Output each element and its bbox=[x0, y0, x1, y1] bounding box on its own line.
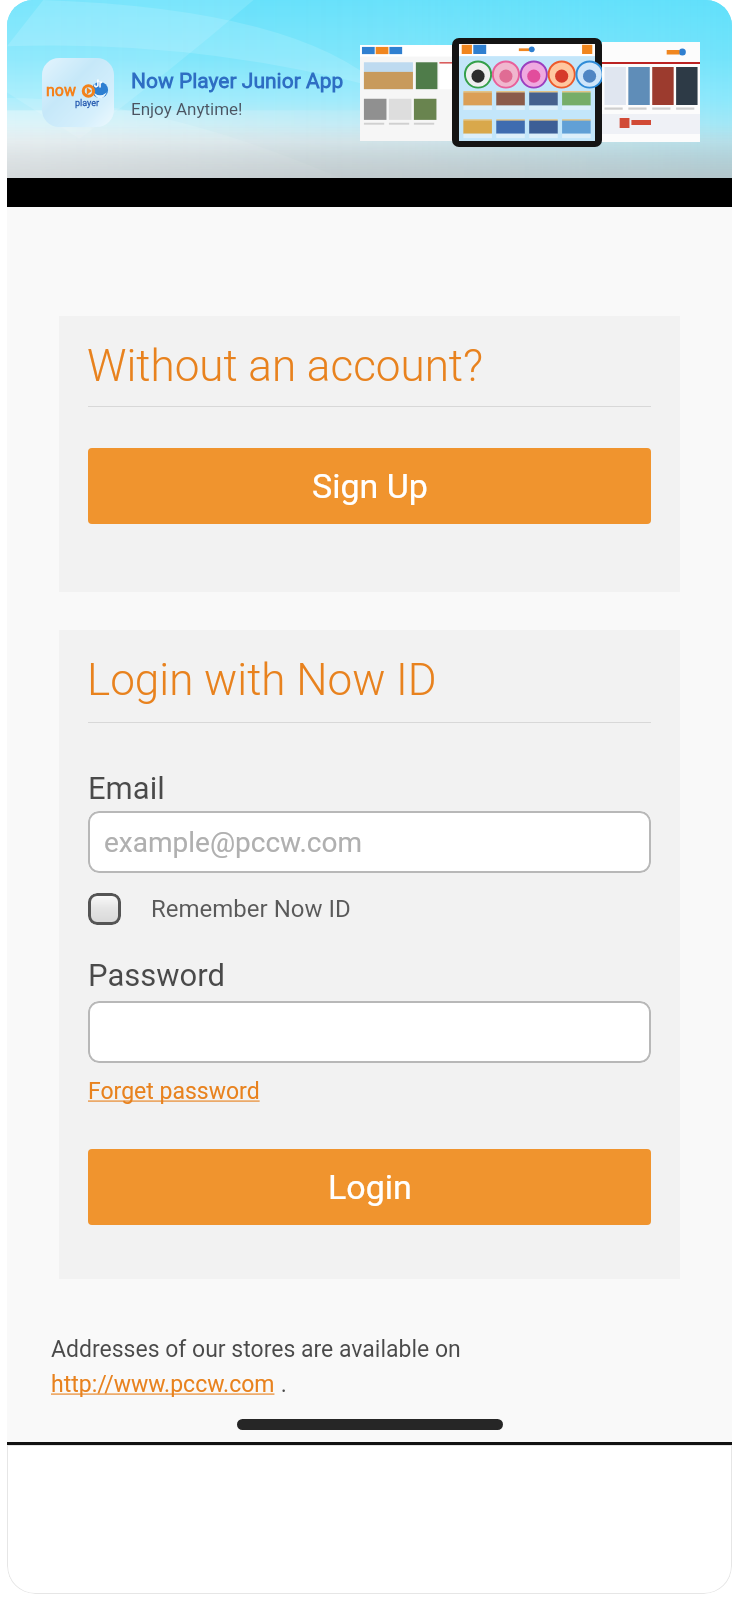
staticText: Email bbox=[88, 770, 165, 806]
button[interactable]: Login bbox=[88, 1149, 651, 1225]
staticText: now bbox=[46, 81, 76, 100]
staticText: Addresses of our stores are available on bbox=[51, 1336, 461, 1363]
button[interactable]: Forget password bbox=[88, 1078, 260, 1105]
staticText: Enjoy Anytime! bbox=[131, 99, 243, 119]
staticText: Login with Now ID bbox=[87, 654, 437, 706]
staticText: Password bbox=[88, 957, 225, 993]
button[interactable]: Sign Up bbox=[88, 448, 651, 524]
staticText: example@pccw.com bbox=[104, 826, 362, 859]
staticText: player bbox=[75, 98, 100, 109]
staticText: Remember Now ID bbox=[151, 895, 351, 923]
button[interactable]: Remember Now ID bbox=[88, 893, 351, 925]
staticText: Jr bbox=[94, 79, 103, 90]
staticText: Login bbox=[328, 1167, 412, 1207]
button[interactable]: example@pccw.com bbox=[88, 811, 651, 873]
staticText: . bbox=[275, 1371, 287, 1398]
staticText: Without an account? bbox=[87, 340, 483, 392]
button[interactable]: http://www.pccw.com bbox=[51, 1371, 275, 1398]
staticText: Sign Up bbox=[312, 466, 428, 506]
button[interactable] bbox=[88, 1001, 651, 1063]
staticText: Now Player Junior App bbox=[131, 69, 344, 94]
